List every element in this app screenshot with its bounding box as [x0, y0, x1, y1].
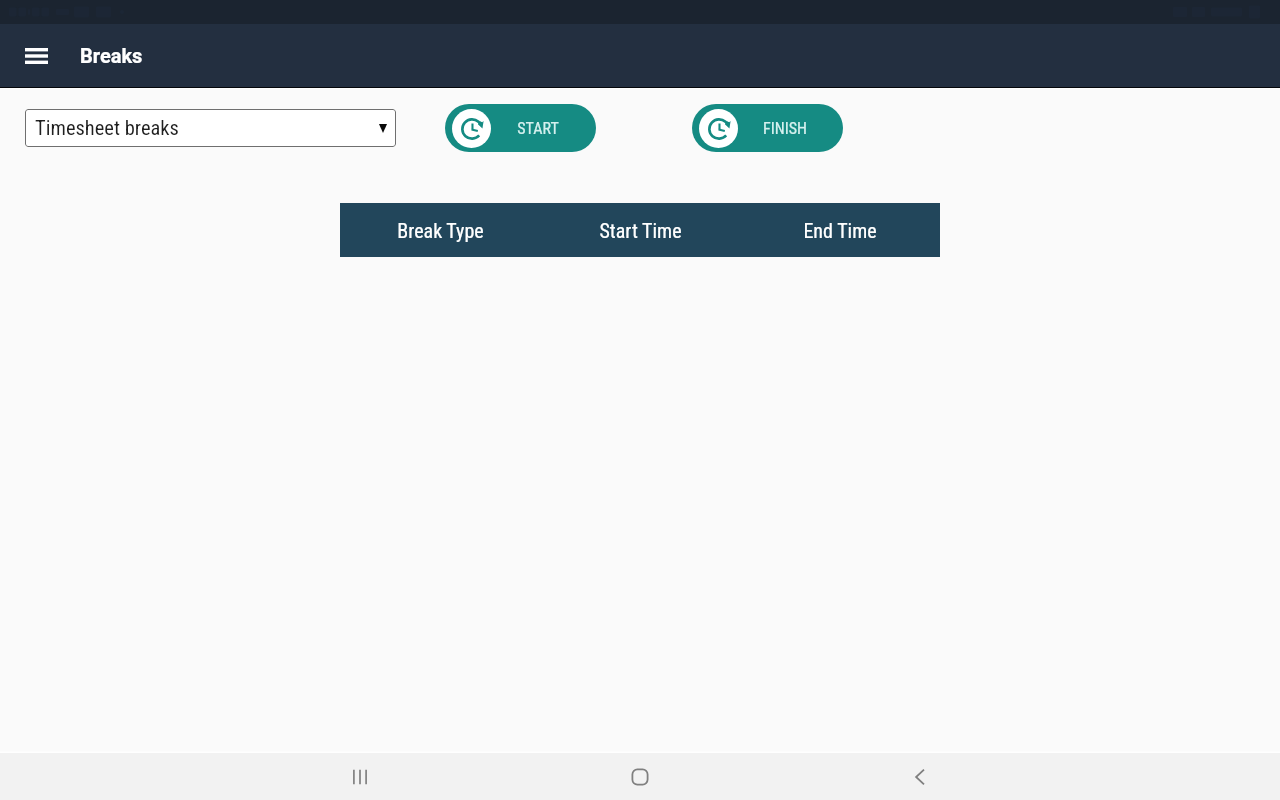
- button[interactable]: Open navigation menu: [12, 32, 60, 80]
- button[interactable]: Back: [896, 753, 944, 800]
- staticText: Timesheet breaks: [35, 116, 179, 140]
- button[interactable]: START: [445, 104, 596, 152]
- button[interactable]: Home: [616, 753, 664, 800]
- button[interactable]: Timesheet breaks: [25, 109, 396, 147]
- staticText: Break Type: [397, 219, 484, 242]
- staticText: End Time: [803, 219, 877, 242]
- staticText: FINISH: [763, 119, 807, 138]
- staticText: START: [517, 119, 559, 138]
- staticText: Breaks: [80, 44, 143, 67]
- button[interactable]: Recent apps: [336, 753, 384, 800]
- staticText: Start Time: [599, 219, 682, 242]
- button[interactable]: FINISH: [692, 104, 843, 152]
